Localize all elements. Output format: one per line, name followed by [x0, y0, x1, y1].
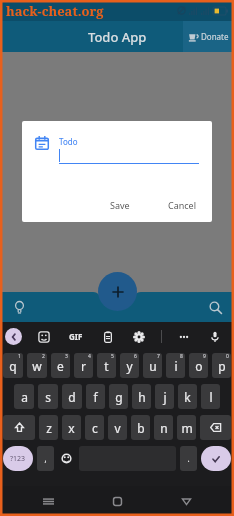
button[interactable]: a [14, 384, 34, 409]
button[interactable]: Shift [3, 415, 35, 440]
staticText: q [9, 358, 17, 374]
staticText: . [187, 453, 190, 464]
button[interactable]: , [37, 446, 54, 471]
staticText: t [104, 358, 109, 374]
button[interactable]: k [178, 384, 197, 409]
staticText: p [218, 358, 226, 374]
staticText: k [184, 389, 191, 405]
staticText: c [92, 420, 98, 436]
staticText: j [163, 389, 167, 405]
button[interactable]: Clipboard [99, 328, 117, 346]
staticText: 4 [88, 353, 91, 360]
button[interactable]: i [166, 353, 185, 378]
button[interactable]: v [108, 415, 127, 440]
button[interactable]: q [3, 353, 23, 378]
button[interactable]: g [109, 384, 128, 409]
button[interactable]: Back [5, 328, 22, 345]
staticText: h [138, 389, 146, 405]
staticText: 1 [18, 353, 21, 360]
button[interactable]: Donate [183, 21, 234, 52]
button[interactable]: Search [205, 297, 225, 317]
button[interactable]: u [143, 353, 162, 378]
button[interactable] [59, 149, 199, 163]
staticText: ?123 [10, 454, 26, 464]
button[interactable]: r [74, 353, 93, 378]
button[interactable]: Voice input [206, 328, 224, 346]
staticText: 5 [111, 353, 114, 360]
button[interactable]: Recents [37, 490, 59, 512]
staticText: s [45, 389, 51, 405]
staticText: GIF [69, 331, 83, 342]
button[interactable]: GIF [66, 328, 86, 345]
staticText: g [115, 389, 123, 405]
staticText: u [149, 358, 157, 374]
button[interactable]: f [86, 384, 105, 409]
button[interactable]: s [38, 384, 58, 409]
button[interactable]: Cancel [160, 196, 205, 214]
staticText: , [44, 453, 47, 464]
staticText: Donate [201, 31, 229, 42]
button[interactable]: j [155, 384, 174, 409]
staticText: e [57, 358, 64, 374]
button[interactable]: Save [102, 196, 138, 214]
staticText: 8 [180, 353, 183, 360]
button[interactable]: n [154, 415, 173, 440]
staticText: 9 [203, 353, 206, 360]
staticText: a [21, 389, 28, 405]
staticText: 7 [157, 353, 160, 360]
button[interactable]: y [120, 353, 139, 378]
staticText: hack-cheat.org [6, 2, 104, 20]
button[interactable]: b [131, 415, 150, 440]
staticText: o [195, 358, 203, 374]
button[interactable]: w [27, 353, 47, 378]
staticText: Todo App [88, 28, 147, 46]
staticText: f [93, 389, 98, 405]
staticText: m [181, 420, 193, 436]
staticText: z [46, 420, 52, 436]
button[interactable]: More options [175, 328, 193, 346]
button[interactable]: c [85, 415, 104, 440]
button[interactable]: Ideas [9, 297, 29, 317]
button[interactable]: m [177, 415, 196, 440]
staticText: Todo [59, 136, 78, 147]
button[interactable]: . [180, 446, 197, 471]
staticText: d [68, 389, 76, 405]
staticText: Cancel [168, 199, 197, 211]
button[interactable]: p [212, 353, 231, 378]
button[interactable]: Enter [201, 446, 231, 471]
staticText: y [126, 358, 133, 374]
staticText: 0 [226, 353, 229, 360]
staticText: r [81, 358, 86, 374]
button[interactable]: t [97, 353, 116, 378]
button[interactable]: x [62, 415, 81, 440]
staticText: l [209, 389, 213, 405]
button[interactable]: o [189, 353, 208, 378]
staticText: 2 [42, 353, 45, 360]
button[interactable]: Home [106, 490, 128, 512]
button[interactable]: Add todo [98, 272, 137, 311]
button[interactable]: Stickers [35, 328, 53, 346]
button[interactable]: e [51, 353, 70, 378]
button[interactable]: z [39, 415, 58, 440]
staticText: n [160, 420, 168, 436]
button[interactable]: ?123 [3, 446, 33, 471]
staticText: 3 [65, 353, 68, 360]
button[interactable]: l [201, 384, 220, 409]
button[interactable]: Back [175, 490, 197, 512]
staticText: b [137, 420, 145, 436]
button[interactable]: d [62, 384, 82, 409]
staticText: v [114, 420, 121, 436]
button[interactable]: h [132, 384, 151, 409]
staticText: i [174, 358, 178, 374]
button[interactable]: Settings [130, 328, 148, 346]
button[interactable]: Emoji [58, 446, 75, 471]
staticText: w [32, 358, 42, 374]
staticText: x [68, 420, 75, 436]
button[interactable]: Backspace [200, 415, 231, 440]
staticText: 6 [134, 353, 137, 360]
staticText: Save [110, 199, 130, 211]
